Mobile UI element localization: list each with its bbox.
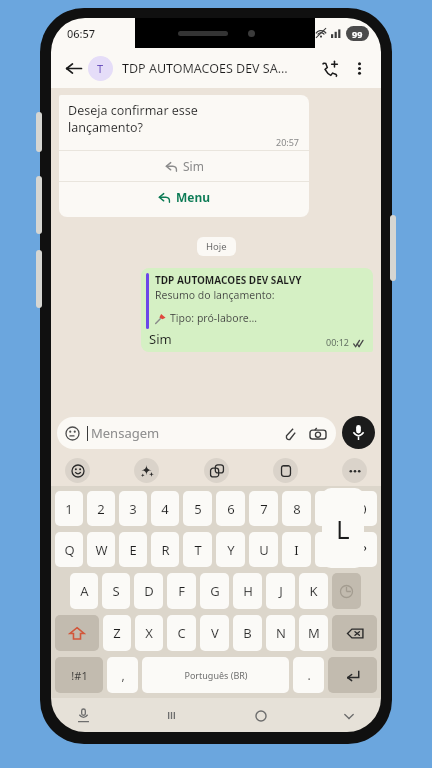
button[interactable]: A (70, 573, 98, 609)
button[interactable]: 9 (315, 491, 344, 526)
button[interactable]: B (233, 615, 262, 651)
staticText: S (112, 582, 120, 600)
button[interactable]: Backspace (332, 615, 377, 651)
button[interactable]: 7 (249, 491, 278, 526)
staticText: Z (113, 624, 121, 642)
staticText: T (97, 61, 104, 76)
staticText: 3 (129, 500, 137, 518)
button[interactable]: F (167, 573, 196, 609)
button[interactable]: Recents (159, 703, 184, 728)
button[interactable]: S (102, 573, 130, 609)
staticText: lançamento? (68, 119, 143, 136)
button[interactable]: . (293, 657, 324, 693)
staticText: 00:12 (326, 336, 350, 348)
button[interactable]: H (233, 573, 262, 609)
button[interactable]: R (151, 532, 179, 567)
button[interactable]: Hide keyboard (336, 703, 361, 728)
button[interactable]: W (87, 532, 115, 567)
staticText: U (259, 541, 269, 559)
staticText: R (161, 541, 170, 559)
button[interactable]: Translate (204, 458, 229, 483)
button[interactable]: Menu (59, 182, 309, 212)
staticText: L (336, 511, 350, 546)
button[interactable]: N (266, 615, 295, 651)
staticText: H (243, 582, 253, 600)
button[interactable]: I (282, 532, 311, 567)
staticText: Sim (149, 330, 172, 348)
staticText: I (294, 541, 299, 559)
staticText: 2 (97, 500, 105, 518)
button[interactable]: !#1 (55, 657, 103, 693)
staticText: TDP AUTOMACOES DEV SALVY (155, 273, 302, 287)
button[interactable]: 5 (183, 491, 212, 526)
button[interactable]: X (135, 615, 163, 651)
button[interactable]: Português (BR) (142, 657, 289, 693)
staticText: X (145, 624, 153, 642)
button[interactable]: 4 (151, 491, 179, 526)
button[interactable]: 3 (119, 491, 147, 526)
button[interactable]: T (183, 532, 212, 567)
button[interactable]: Mensagem (57, 417, 336, 449)
button[interactable]: J (266, 573, 295, 609)
button[interactable]: 8 (282, 491, 311, 526)
button[interactable]: Voice message (342, 416, 375, 449)
button[interactable]: E (119, 532, 147, 567)
staticText: Q (64, 541, 75, 559)
staticText: 99 (352, 28, 363, 40)
staticText: Mensagem (91, 424, 160, 442)
staticText: Menu (176, 189, 211, 205)
button[interactable]: 2 (87, 491, 115, 526)
staticText: A (80, 582, 89, 600)
button[interactable]: Deseja confirmar esse (59, 95, 309, 217)
staticText: Deseja confirmar esse (68, 102, 198, 119)
button[interactable]: More options (347, 56, 372, 81)
button[interactable]: Back (60, 55, 86, 81)
staticText: W (95, 541, 108, 559)
button[interactable]: U (249, 532, 278, 567)
staticText: Hoje (206, 240, 227, 253)
staticText: 4 (161, 500, 169, 518)
button[interactable]: D (134, 573, 163, 609)
staticText: F (178, 582, 185, 600)
button[interactable]: Shift (55, 615, 99, 651)
staticText: E (129, 541, 137, 559)
staticText: Tipo: pró-labore… (170, 311, 257, 325)
button[interactable]: 6 (216, 491, 245, 526)
button[interactable]: Sim (59, 151, 309, 181)
staticText: C (177, 624, 186, 642)
button[interactable]: , (107, 657, 138, 693)
button[interactable]: Attach (279, 423, 300, 444)
button[interactable]: Q (55, 532, 83, 567)
button[interactable]: M (299, 615, 328, 651)
button[interactable]: G (200, 573, 229, 609)
button[interactable]: V (200, 615, 229, 651)
button[interactable]: Emoji (65, 458, 90, 483)
button[interactable]: Add call (317, 56, 342, 81)
button[interactable]: O (315, 532, 344, 567)
button[interactable]: Y (216, 532, 245, 567)
staticText: J (279, 582, 283, 600)
button[interactable]: L (332, 573, 361, 609)
button[interactable]: Clipboard (273, 458, 298, 483)
button[interactable]: 0 (348, 491, 377, 526)
button[interactable]: C (167, 615, 196, 651)
staticText: K (309, 582, 318, 600)
button[interactable]: Home (248, 703, 273, 728)
button[interactable]: Enter (328, 657, 377, 693)
button[interactable]: Z (103, 615, 131, 651)
button[interactable]: TDP AUTOMACOES DEV SALVY (141, 268, 373, 352)
staticText: !#1 (71, 668, 88, 683)
button[interactable]: P (348, 532, 377, 567)
button[interactable]: More (342, 458, 367, 483)
button[interactable]: AI sticker (134, 458, 159, 483)
staticText: TDP AUTOMACOES DEV SA… (122, 60, 288, 77)
button[interactable]: 1 (55, 491, 83, 526)
button[interactable]: K (299, 573, 328, 609)
button[interactable]: Voice input (71, 703, 96, 728)
button[interactable]: T (88, 56, 113, 81)
button[interactable]: Camera (307, 423, 328, 444)
staticText: Sim (183, 158, 204, 174)
staticText: T (194, 541, 202, 559)
